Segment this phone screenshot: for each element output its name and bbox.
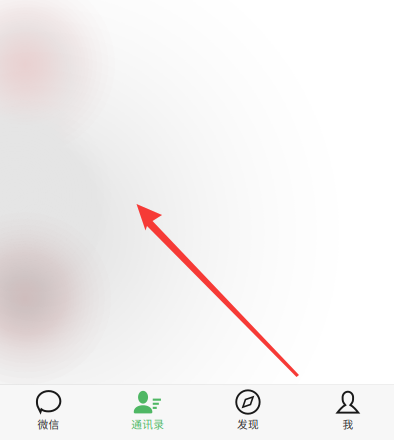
button[interactable]: 通讯录	[98, 385, 197, 440]
staticText: 通讯录	[131, 416, 164, 431]
button[interactable]: 发现	[197, 385, 295, 440]
button[interactable]: 我	[295, 385, 394, 440]
staticText: 我	[342, 416, 353, 431]
staticText: 发现	[237, 416, 259, 431]
staticText: 微信	[37, 416, 59, 431]
button[interactable]: 微信	[0, 385, 98, 440]
